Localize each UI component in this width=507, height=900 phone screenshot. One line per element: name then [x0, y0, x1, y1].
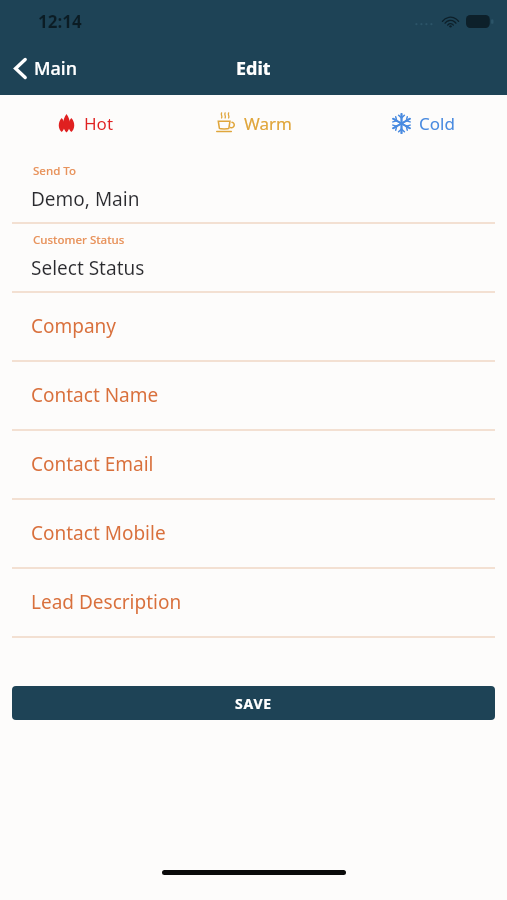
button[interactable]: Warm	[169, 104, 338, 142]
staticText: Customer Status	[33, 232, 125, 248]
button[interactable]: Lead Description	[0, 569, 507, 638]
staticText: Warm	[244, 112, 292, 135]
staticText: Contact Mobile	[31, 520, 166, 546]
button[interactable]: Contact Email	[0, 431, 507, 500]
button[interactable]: Company	[0, 293, 507, 362]
button[interactable]: Contact Name	[0, 362, 507, 431]
button[interactable]: Cold	[338, 104, 507, 142]
other: Back	[14, 58, 27, 79]
staticText: Cold	[419, 112, 455, 135]
staticText: SAVE	[235, 694, 272, 713]
button[interactable]: SAVE	[12, 686, 495, 720]
staticText: Contact Name	[31, 382, 159, 408]
staticText: Edit	[236, 56, 271, 81]
staticText: Hot	[84, 112, 114, 135]
staticText: 12:14	[38, 10, 82, 33]
staticText: Main	[34, 56, 77, 81]
button[interactable]: Hot	[0, 104, 169, 142]
staticText: Lead Description	[31, 589, 182, 615]
staticText: Company	[31, 313, 117, 339]
button[interactable]: Contact Mobile	[0, 500, 507, 569]
button[interactable]: Send To	[0, 155, 507, 224]
button[interactable]: Back	[8, 50, 83, 87]
staticText: Contact Email	[31, 451, 154, 477]
staticText: Send To	[33, 163, 76, 179]
staticText: Demo, Main	[31, 186, 140, 212]
button[interactable]: Customer Status	[0, 224, 507, 293]
staticText: Select Status	[31, 255, 145, 281]
